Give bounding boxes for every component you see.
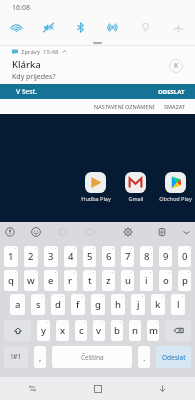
button[interactable]: Auto rotate: [96, 16, 129, 39]
button[interactable]: V šest.: [0, 84, 195, 99]
button[interactable]: Voice input: [2, 224, 18, 240]
staticText: 3: [48, 250, 54, 263]
button[interactable]: Sound off: [32, 16, 64, 39]
staticText: Čeština: [81, 353, 104, 362]
button[interactable]: q: [4, 270, 18, 291]
button[interactable]: v: [93, 320, 105, 341]
button[interactable]: Čeština: [52, 346, 132, 368]
staticText: 16:08: [12, 3, 30, 13]
button[interactable]: 5: [83, 246, 96, 267]
staticText: 4: [68, 250, 74, 263]
button[interactable]: Collapse: [178, 224, 194, 240]
staticText: h: [115, 298, 121, 311]
staticText: j: [137, 298, 140, 311]
staticText: V šest.: [16, 87, 38, 97]
button[interactable]: p: [178, 270, 191, 291]
button[interactable]: Airplane mode: [162, 16, 195, 39]
button[interactable]: ,: [34, 346, 46, 368]
staticText: q: [8, 274, 14, 287]
button[interactable]: i: [140, 270, 153, 291]
button[interactable]: c: [75, 320, 87, 341]
button[interactable]: Recents: [0, 377, 65, 400]
button[interactable]: 1: [4, 246, 18, 267]
button[interactable]: Clipboard: [154, 224, 170, 240]
staticText: z: [106, 274, 111, 287]
button[interactable]: b: [111, 320, 123, 341]
button[interactable]: r: [64, 270, 77, 291]
staticText: y: [41, 324, 47, 337]
button[interactable]: l: [171, 294, 185, 315]
button[interactable]: 4: [64, 246, 77, 267]
button[interactable]: k: [151, 294, 165, 315]
button[interactable]: Flashlight: [129, 16, 162, 39]
button[interactable]: GIF: [82, 224, 98, 240]
button[interactable]: j: [131, 294, 145, 315]
button[interactable]: 8: [140, 246, 153, 267]
button[interactable]: s: [31, 294, 45, 315]
staticText: 6: [106, 250, 112, 263]
staticText: 5: [87, 250, 93, 263]
button[interactable]: g: [91, 294, 105, 315]
button[interactable]: m: [147, 320, 159, 341]
staticText: l: [177, 298, 180, 311]
button[interactable]: SMAZAT: [164, 103, 186, 110]
button[interactable]: Hudba Play: [76, 172, 115, 202]
button[interactable]: u: [121, 270, 134, 291]
button[interactable]: Home: [65, 377, 130, 400]
button[interactable]: Bluetooth: [64, 16, 96, 39]
staticText: a: [15, 298, 21, 311]
staticText: !#1: [11, 352, 22, 362]
button[interactable]: w: [24, 270, 38, 291]
button[interactable]: e: [44, 270, 58, 291]
button[interactable]: !#1: [4, 346, 28, 368]
button[interactable]: Odeslat: [156, 346, 191, 368]
button[interactable]: 6: [102, 246, 115, 267]
button[interactable]: x: [56, 320, 69, 341]
button[interactable]: Obchod Play: [156, 172, 195, 202]
staticText: K: [174, 61, 179, 71]
button[interactable]: Shift: [4, 320, 31, 341]
staticText: Obchod Play: [159, 195, 192, 202]
button[interactable]: Backspace: [165, 320, 191, 341]
button[interactable]: d: [51, 294, 65, 315]
staticText: n: [132, 324, 138, 337]
button[interactable]: 3: [44, 246, 58, 267]
button[interactable]: o: [159, 270, 172, 291]
button[interactable]: y: [37, 320, 50, 341]
staticText: b: [114, 324, 120, 337]
button[interactable]: n: [129, 320, 141, 341]
button[interactable]: t: [83, 270, 96, 291]
staticText: Gmail: [128, 195, 144, 202]
button[interactable]: Hide keyboard: [130, 377, 195, 400]
button[interactable]: 9: [159, 246, 172, 267]
button[interactable]: Wi-Fi: [0, 16, 32, 39]
button[interactable]: a: [10, 294, 25, 315]
button[interactable]: 2: [24, 246, 38, 267]
button[interactable]: Settings: [120, 224, 136, 240]
staticText: Odeslat: [162, 353, 186, 362]
button[interactable]: .: [138, 346, 150, 368]
staticText: w: [27, 274, 35, 287]
button[interactable]: f: [71, 294, 85, 315]
button[interactable]: NASTAVENÍ OZNÁMENÍ: [94, 103, 155, 110]
staticText: v: [96, 324, 102, 337]
button[interactable]: z: [102, 270, 115, 291]
button[interactable]: Emoji: [28, 224, 44, 240]
staticText: u: [125, 274, 131, 287]
staticText: 2: [28, 250, 34, 263]
staticText: 15:48: [43, 48, 59, 56]
staticText: t: [88, 274, 92, 287]
button[interactable]: 7: [121, 246, 134, 267]
staticText: g: [95, 298, 101, 311]
staticText: ,: [39, 351, 42, 363]
staticText: .: [143, 351, 146, 363]
button[interactable]: Stickers: [55, 224, 71, 240]
staticText: i: [145, 274, 148, 287]
button[interactable]: h: [111, 294, 125, 315]
button[interactable]: 0: [178, 246, 191, 267]
staticText: Zprávy: [21, 48, 40, 56]
staticText: c: [79, 324, 84, 337]
staticText: r: [68, 274, 73, 287]
staticText: 8: [144, 250, 150, 263]
button[interactable]: Gmail: [116, 172, 155, 202]
